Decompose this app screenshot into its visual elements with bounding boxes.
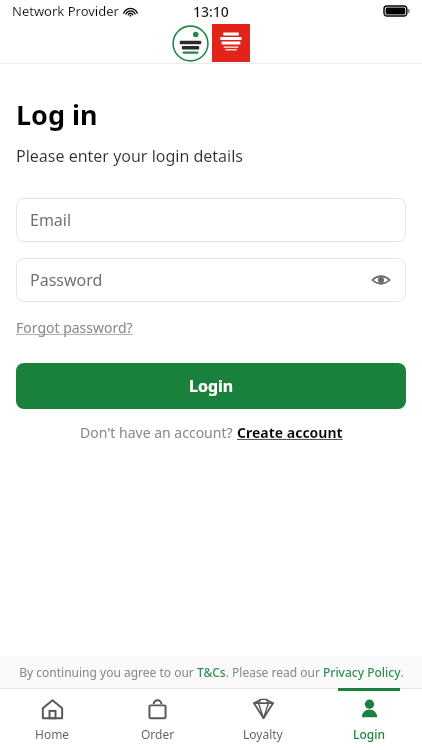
button[interactable]: Home — [0, 688, 105, 750]
button[interactable]: Order — [105, 688, 210, 750]
button[interactable]: Login — [316, 688, 422, 750]
staticText: Log in — [16, 96, 98, 133]
button[interactable]: Forgot password? — [16, 318, 133, 337]
button[interactable]: Email — [16, 198, 406, 242]
staticText: Create account — [237, 423, 343, 442]
button[interactable]: Password — [16, 258, 406, 302]
staticText: Home — [35, 726, 70, 742]
staticText: Don't have an account? — [80, 423, 237, 442]
button[interactable]: Login — [16, 363, 406, 409]
staticText: Login — [189, 375, 234, 397]
button[interactable]: Loyalty — [210, 688, 316, 750]
staticText: Please enter your login details — [16, 145, 243, 167]
staticText: Loyalty — [243, 726, 283, 742]
staticText: Forgot password? — [16, 318, 133, 337]
staticText: Network Provider — [12, 2, 119, 20]
staticText: Login — [353, 726, 385, 742]
button[interactable]: Show password — [370, 269, 392, 291]
staticText: By continuing you agree to our T&Cs. Ple… — [19, 664, 404, 680]
staticText: Order — [141, 726, 175, 742]
staticText: 13:10 — [193, 2, 229, 21]
button[interactable]: Don't have an account? — [80, 423, 343, 442]
staticText: Password — [30, 269, 103, 291]
staticText: Email — [30, 209, 72, 231]
